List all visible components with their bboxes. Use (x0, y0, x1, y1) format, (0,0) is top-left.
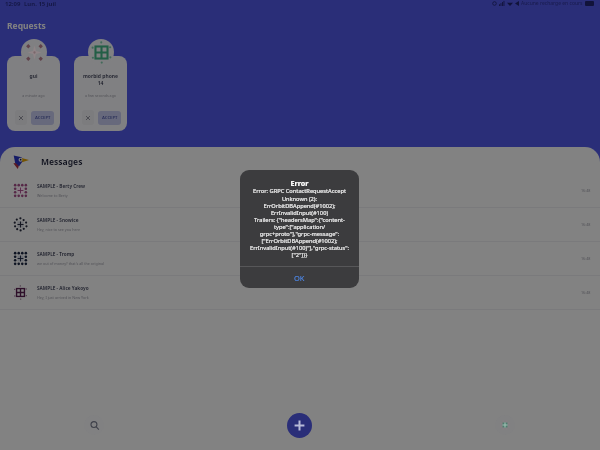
staticText: 16:48 (581, 256, 591, 261)
button[interactable]: gui (7, 56, 60, 131)
staticText: Hey, nice to see you here (37, 227, 81, 232)
staticText: Aucune recharge en cours (521, 0, 583, 7)
staticText: SAMPLE - Berty Crew (37, 183, 86, 189)
staticText: SAMPLE - Snowice (37, 217, 79, 223)
staticText: 16:48 (581, 188, 591, 193)
staticText: SAMPLE - Tromp (37, 251, 75, 257)
staticText: Lun. 15 juil (24, 0, 57, 8)
button[interactable]: ACCEPT (31, 111, 54, 125)
staticText: Error: GRPC ContactRequestAccept Unknown… (249, 187, 350, 258)
button[interactable]: SAMPLE - Alice Yakoyo (0, 276, 600, 309)
staticText: gui (15, 73, 52, 80)
staticText: OK (294, 273, 305, 283)
button[interactable]: SAMPLE - Snowice (0, 208, 600, 241)
staticText: morbid phone 14 (82, 73, 119, 87)
staticText: a minute ago (7, 93, 60, 98)
button[interactable]: Search (84, 415, 104, 435)
staticText: Hey, I just arrived in New York (37, 295, 89, 300)
button[interactable]: SAMPLE - Tromp (0, 242, 600, 275)
staticText: ACCEPT (35, 115, 51, 121)
staticText: 16:48 (581, 222, 591, 227)
staticText: 16:48 (581, 290, 591, 295)
button[interactable]: ACCEPT (98, 111, 121, 125)
staticText: we out of money? that's all the original (37, 261, 104, 266)
staticText: ACCEPT (102, 115, 118, 121)
button[interactable]: New conversation (287, 413, 312, 438)
staticText: SAMPLE - Alice Yakoyo (37, 285, 89, 291)
staticText: Messages (41, 156, 83, 168)
button[interactable]: Decline (82, 110, 94, 125)
staticText: 12:09 (5, 0, 21, 8)
staticText: a few seconds ago (74, 93, 127, 98)
button[interactable]: SAMPLE - Berty Crew (0, 174, 600, 207)
button[interactable]: OK (240, 267, 359, 288)
button[interactable]: Profile (495, 415, 515, 435)
staticText: Error (240, 178, 359, 188)
staticText: Welcome to Berty (37, 193, 68, 198)
button[interactable]: Decline (15, 110, 27, 125)
staticText: Requests (7, 20, 46, 32)
button[interactable]: morbid phone 14 (74, 56, 127, 131)
